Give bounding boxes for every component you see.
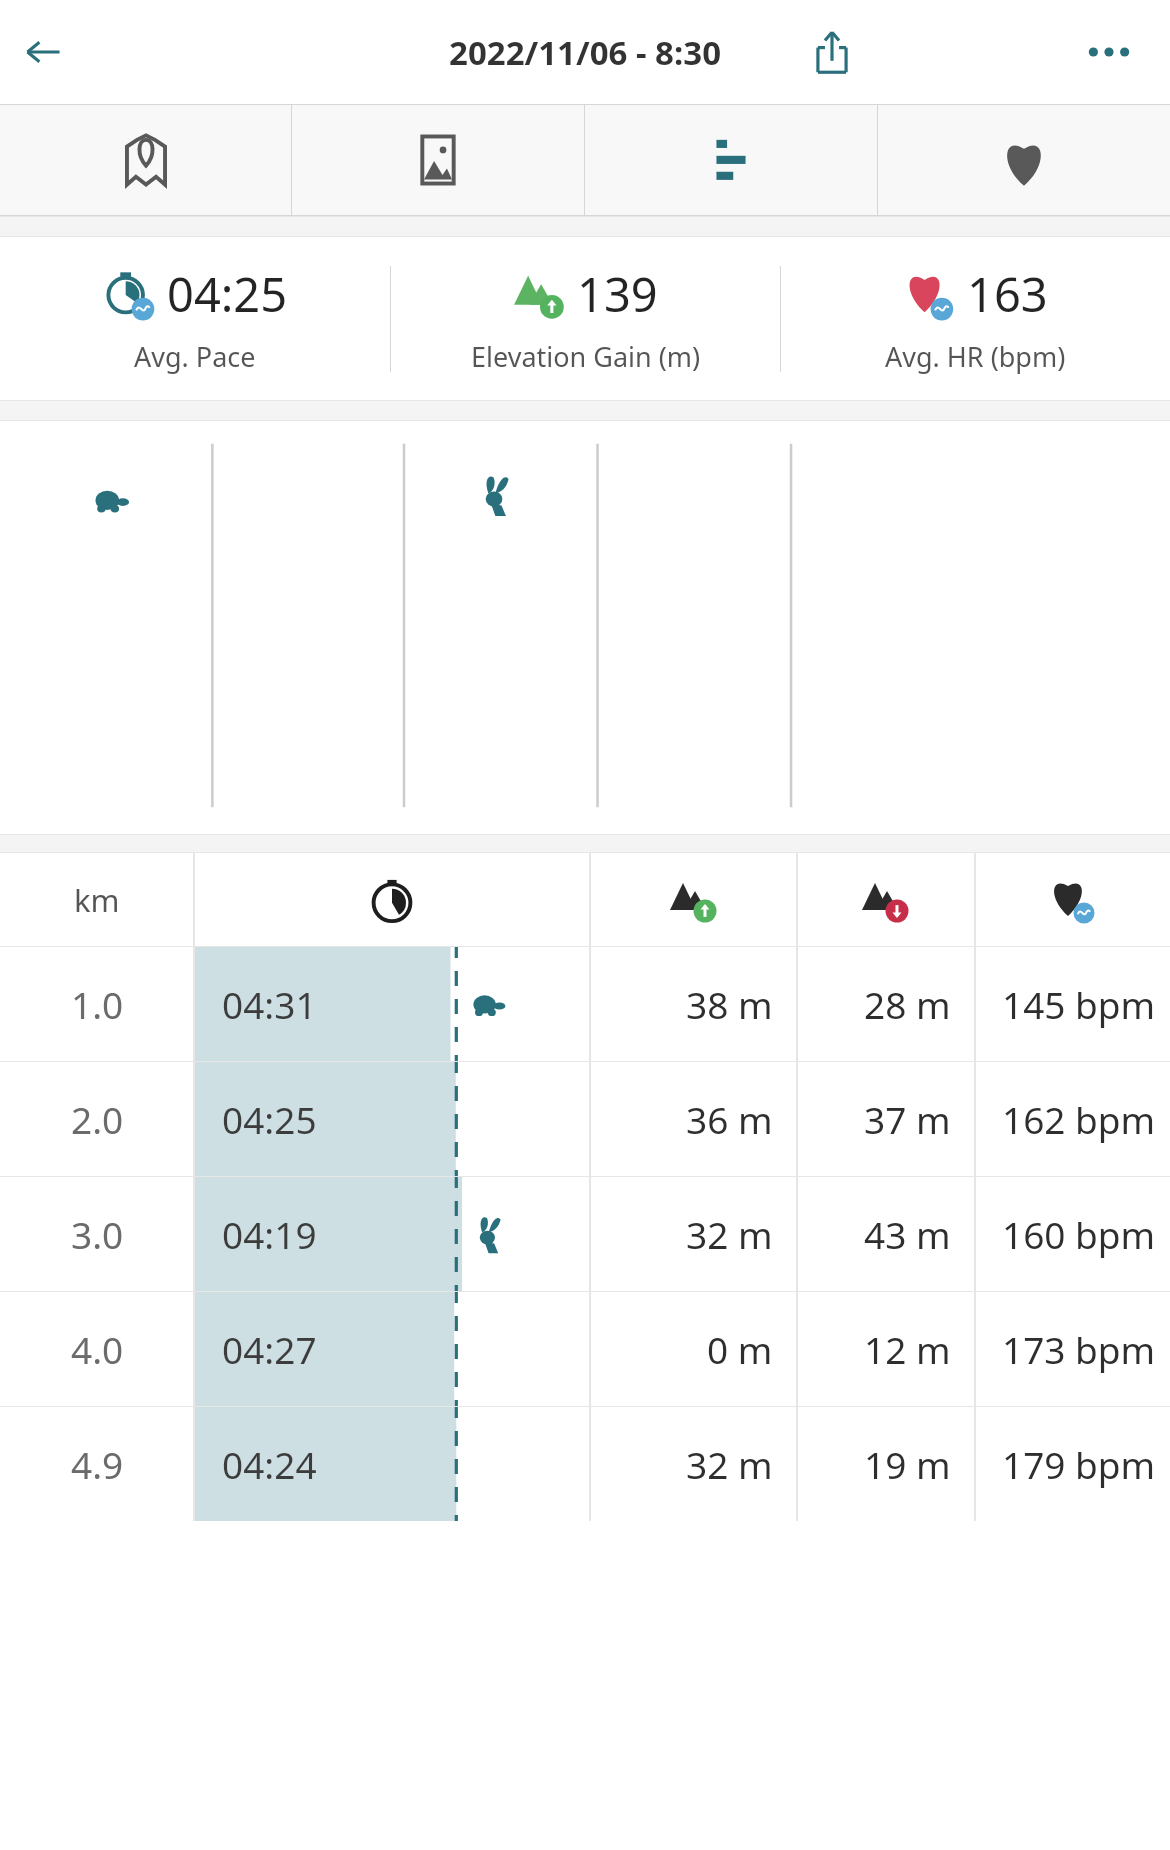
staticText: 179 bpm [1002,1439,1156,1489]
staticText: 04:27 [222,1324,317,1374]
button[interactable]: More options [1074,17,1144,87]
staticText: 04:25 [222,1094,317,1144]
staticText: 145 bpm [1002,979,1156,1029]
staticText: Elevation Gain (m) [471,338,701,375]
button[interactable]: 163 [781,237,1170,400]
button[interactable]: Map [0,105,291,215]
button[interactable]: Share [794,14,870,90]
staticText: 43 m [864,1209,951,1259]
staticText: 19 m [864,1439,951,1489]
staticText: 04:25 [167,262,288,326]
staticText: 2.0 [71,1094,124,1144]
button[interactable]: Photos [292,105,584,215]
staticText: 4.0 [71,1324,124,1374]
staticText: 32 m [686,1209,773,1259]
staticText: Avg. Pace [134,338,256,375]
staticText: 4.9 [71,1439,124,1489]
staticText: Avg. HR (bpm) [885,338,1066,375]
staticText: 37 m [864,1094,951,1144]
button[interactable]: 3.0 [0,1177,1170,1291]
staticText: 04:31 [222,979,317,1029]
staticText: 162 bpm [1002,1094,1156,1144]
button[interactable]: Back [10,19,76,85]
button[interactable]: Charts [585,105,877,215]
staticText: 3.0 [71,1209,124,1259]
button[interactable]: 2.0 [0,1062,1170,1176]
staticText: 0 m [707,1324,773,1374]
staticText: 04:19 [222,1209,317,1259]
button[interactable]: 1.0 [0,947,1170,1061]
button[interactable]: 139 [391,237,780,400]
staticText: 173 bpm [1002,1324,1156,1374]
button[interactable]: 4.0 [0,1292,1170,1406]
button[interactable]: Heart rate [878,105,1170,215]
staticText: 163 [967,262,1048,326]
staticText: 28 m [864,979,951,1029]
button[interactable]: 4.9 [0,1407,1170,1521]
staticText: km [74,879,120,921]
button[interactable]: 04:25 [0,237,390,400]
staticText: 2022/11/06 - 8:30 [449,30,722,75]
staticText: 12 m [864,1324,951,1374]
staticText: 32 m [686,1439,773,1489]
staticText: 04:24 [222,1439,317,1489]
staticText: 36 m [686,1094,773,1144]
staticText: 160 bpm [1002,1209,1156,1259]
staticText: 1.0 [71,979,124,1029]
staticText: 38 m [686,979,773,1029]
staticText: 139 [577,262,658,326]
